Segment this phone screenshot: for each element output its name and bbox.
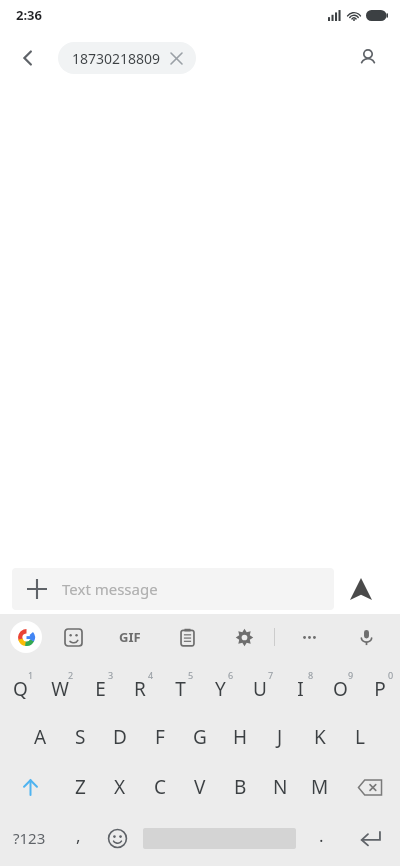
button[interactable]: Contact [348,38,388,78]
staticText: C [154,774,167,800]
button[interactable]: I [280,660,320,712]
button[interactable]: P [360,660,400,712]
button[interactable]: O [320,660,360,712]
button[interactable]: Send [334,568,388,610]
staticText: O [333,676,348,702]
staticText: Z [75,774,86,800]
button[interactable]: M [300,762,340,812]
staticText: Y [215,676,226,702]
staticText: Q [13,676,28,702]
button[interactable]: ?123 [0,812,59,864]
staticText: 9 [348,669,354,681]
staticText: A [34,724,47,750]
button[interactable]: Settings [224,617,264,657]
button[interactable]: GIF [110,617,150,657]
button[interactable]: Z [60,762,100,812]
button[interactable]: Enter [341,812,400,864]
button[interactable]: J [260,712,300,762]
staticText: N [273,774,288,800]
staticText: T [175,676,186,702]
button[interactable] [137,812,302,864]
button[interactable]: Clipboard [167,617,207,657]
staticText: , [76,824,81,847]
staticText: B [234,774,247,800]
staticText: F [155,724,165,750]
staticText: G [193,724,207,750]
staticText: 4 [148,669,154,681]
staticText: ?123 [13,828,46,848]
button[interactable]: Voice input [346,617,386,657]
button[interactable]: Text message [12,568,334,610]
staticText: R [134,676,146,702]
button[interactable]: Google [10,621,42,653]
staticText: J [277,724,283,750]
staticText: GIF [119,628,141,646]
staticText: S [75,724,86,750]
button[interactable]: Back [8,38,48,78]
button[interactable]: Backspace [340,762,400,812]
staticText: K [314,724,326,750]
button[interactable]: , [59,812,98,864]
button[interactable]: D [100,712,140,762]
button[interactable]: B [220,762,260,812]
button[interactable]: C [140,762,180,812]
staticText: 1 [28,669,34,681]
button[interactable]: Shift [0,762,60,812]
button[interactable]: Y [200,660,240,712]
staticText: M [311,774,329,800]
staticText: 3 [108,669,114,681]
staticText: W [51,676,69,702]
button[interactable]: V [180,762,220,812]
staticText: P [374,676,386,702]
button[interactable]: 18730218809 [58,42,196,74]
button[interactable]: N [260,762,300,812]
button[interactable]: H [220,712,260,762]
staticText: 2 [68,669,74,681]
staticText: 8 [308,669,314,681]
staticText: D [113,724,127,750]
button[interactable]: . [302,812,341,864]
staticText: L [355,724,365,750]
button[interactable]: L [340,712,380,762]
staticText: 7 [268,669,274,681]
button[interactable]: R [120,660,160,712]
staticText: 18730218809 [72,49,161,68]
button[interactable]: Q [0,660,40,712]
staticText: . [319,824,324,847]
staticText: I [297,676,304,702]
staticText: 0 [388,669,394,681]
staticText: U [253,676,267,702]
staticText: Text message [62,579,158,599]
button[interactable]: F [140,712,180,762]
button[interactable]: S [60,712,100,762]
button[interactable]: W [40,660,80,712]
staticText: 5 [188,669,194,681]
button[interactable]: X [100,762,140,812]
button[interactable]: A [20,712,60,762]
staticText: 6 [228,669,234,681]
staticText: V [194,774,206,800]
button[interactable]: Emoji [98,812,137,864]
staticText: H [233,724,248,750]
staticText: 2:36 [16,6,42,24]
button[interactable]: T [160,660,200,712]
button[interactable]: Sticker [53,617,93,657]
button[interactable]: K [300,712,340,762]
button[interactable]: E [80,660,120,712]
staticText: E [95,676,106,702]
staticText: X [114,774,126,800]
button[interactable]: U [240,660,280,712]
button[interactable]: G [180,712,220,762]
button[interactable]: More options [289,617,329,657]
